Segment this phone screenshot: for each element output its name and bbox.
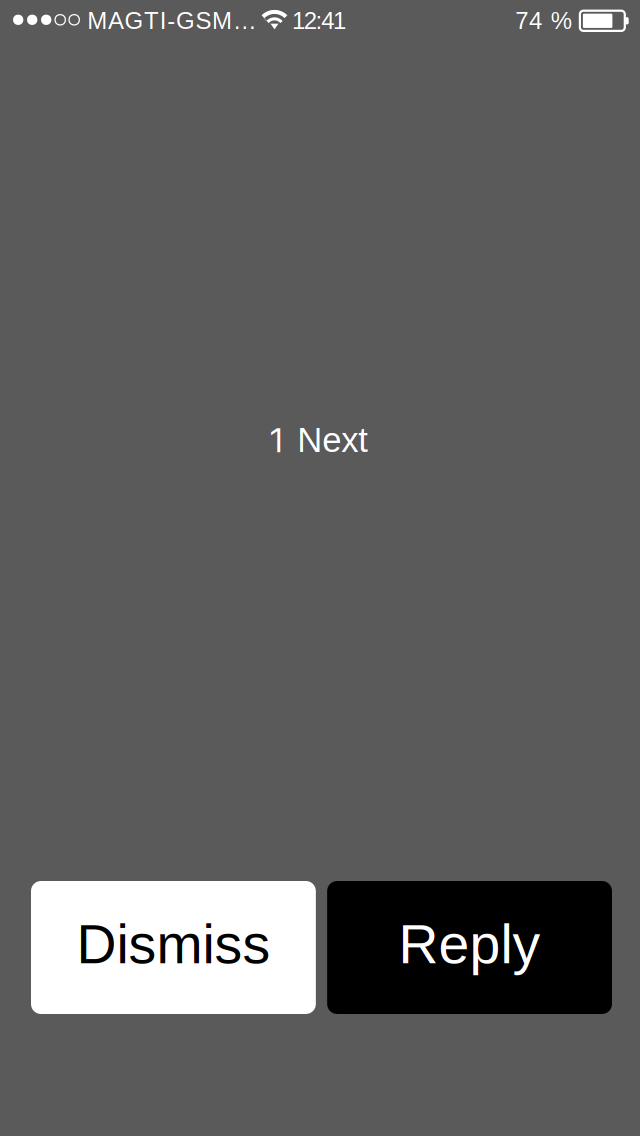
staticText: Next bbox=[297, 421, 368, 459]
staticText: Dismiss bbox=[76, 913, 270, 975]
staticText: 74 % bbox=[515, 7, 572, 34]
staticText: Reply bbox=[399, 913, 541, 975]
button[interactable]: Dismiss bbox=[31, 881, 316, 1014]
staticText: 1 bbox=[270, 419, 283, 460]
staticText: MAGTI-GSM… bbox=[87, 7, 257, 34]
staticText: 12:41 bbox=[292, 7, 346, 34]
button[interactable]: Reply bbox=[327, 881, 612, 1014]
